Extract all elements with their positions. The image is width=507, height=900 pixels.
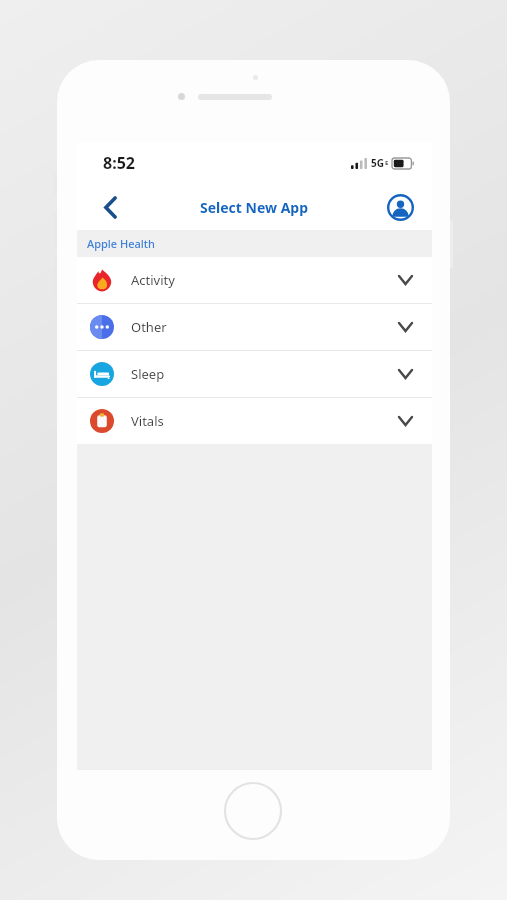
button[interactable]: Profile	[382, 189, 418, 225]
staticText: Select New App	[200, 198, 309, 217]
staticText: 5G	[371, 156, 384, 170]
button[interactable]: Activity	[77, 257, 432, 303]
button[interactable]: Back	[91, 188, 129, 226]
staticText: 8:52	[103, 152, 135, 174]
button[interactable]: Sleep	[77, 351, 432, 397]
staticText: Other	[131, 318, 167, 336]
staticText: Activity	[131, 271, 175, 289]
staticText: Apple Health	[87, 236, 155, 251]
button[interactable]: Vitals	[77, 398, 432, 444]
staticText: Vitals	[131, 412, 164, 430]
staticText: Sleep	[131, 365, 165, 383]
button[interactable]: Other	[77, 304, 432, 350]
staticText: E	[385, 159, 389, 167]
